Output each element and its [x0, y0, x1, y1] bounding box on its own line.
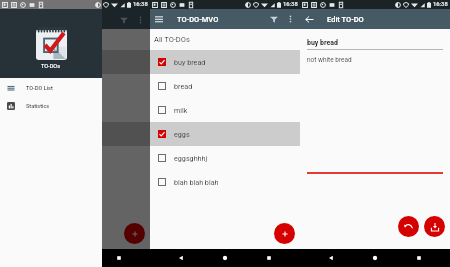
- staticText: TO-DO-MVO: [177, 15, 219, 24]
- staticText: buy bread: [307, 39, 339, 47]
- staticText: 16:38: [433, 1, 448, 8]
- staticText: not white bread: [307, 56, 352, 64]
- staticText: milk: [174, 106, 188, 114]
- button[interactable]: Close navigation drawer: [0, 0, 150, 267]
- staticText: buy bread: [24, 58, 56, 66]
- button[interactable]: Save: [424, 216, 445, 237]
- button[interactable]: Add task: [274, 223, 295, 244]
- button[interactable]: eggsghhhj: [150, 146, 300, 170]
- staticText: All TO-DOs: [154, 35, 190, 44]
- button[interactable]: eggs: [150, 122, 300, 146]
- staticText: milk: [24, 106, 38, 114]
- button[interactable]: blah blah blah: [150, 170, 300, 194]
- staticText: eggs: [174, 130, 190, 138]
- button[interactable]: buy bread: [150, 50, 300, 74]
- button[interactable]: Home: [362, 249, 388, 267]
- button[interactable]: Back: [318, 249, 344, 267]
- staticText: TO-DOs: [41, 63, 61, 70]
- staticText: TO-DO List: [26, 85, 53, 91]
- button[interactable]: Back: [168, 249, 194, 267]
- button[interactable]: milk: [150, 98, 300, 122]
- staticText: eggsghhhj: [174, 154, 208, 162]
- button[interactable]: Undo: [398, 216, 419, 237]
- button[interactable]: Recents: [106, 249, 132, 267]
- staticText: Statistics: [26, 103, 50, 109]
- button[interactable]: Filter: [265, 9, 282, 29]
- staticText: 16:38: [133, 1, 148, 8]
- staticText: bread: [24, 82, 43, 90]
- button[interactable]: TO-DO List: [0, 79, 102, 97]
- button[interactable]: bread: [150, 74, 300, 98]
- staticText: Edit TO-DO: [327, 15, 364, 24]
- button[interactable]: Back: [300, 9, 318, 29]
- staticText: 16:38: [283, 1, 298, 8]
- staticText: blah blah blah: [174, 178, 219, 186]
- button[interactable]: More options: [282, 9, 299, 29]
- button[interactable]: Open navigation drawer: [150, 9, 167, 29]
- staticText: buy bread: [174, 58, 206, 66]
- button[interactable]: Recents: [256, 249, 282, 267]
- button[interactable]: Statistics: [0, 97, 102, 115]
- button[interactable]: Recents: [406, 249, 432, 267]
- staticText: bread: [174, 82, 193, 90]
- button[interactable]: Home: [212, 249, 238, 267]
- staticText: All TO-DOs: [4, 35, 40, 44]
